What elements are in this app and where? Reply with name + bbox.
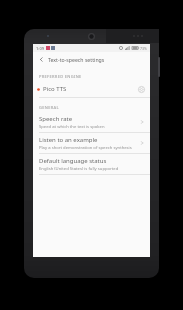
button[interactable]: Navigate up bbox=[36, 54, 46, 64]
staticText: English (United States) is fully support… bbox=[39, 166, 119, 172]
staticText: Pico TTS bbox=[43, 85, 67, 93]
staticText: Text-to-speech settings bbox=[48, 56, 105, 63]
staticText: GENERAL bbox=[39, 105, 59, 110]
staticText: 1:09 bbox=[36, 46, 44, 51]
staticText: Listen to an example bbox=[39, 136, 98, 144]
button[interactable]: Listen to an example bbox=[33, 133, 150, 153]
staticText: Default language status bbox=[39, 157, 107, 165]
staticText: Play a short demonstration of speech syn… bbox=[39, 145, 132, 151]
button[interactable]: Default language status bbox=[33, 154, 150, 174]
button[interactable]: Pico TTS bbox=[33, 81, 150, 97]
button[interactable]: Engine settings bbox=[135, 83, 147, 95]
button[interactable]: Speech rate bbox=[33, 112, 150, 132]
staticText: 73% bbox=[140, 46, 147, 51]
staticText: PREFERRED ENGINE bbox=[39, 74, 82, 79]
staticText: Speed at which the text is spoken bbox=[39, 124, 105, 130]
staticText: Speech rate bbox=[39, 115, 73, 123]
